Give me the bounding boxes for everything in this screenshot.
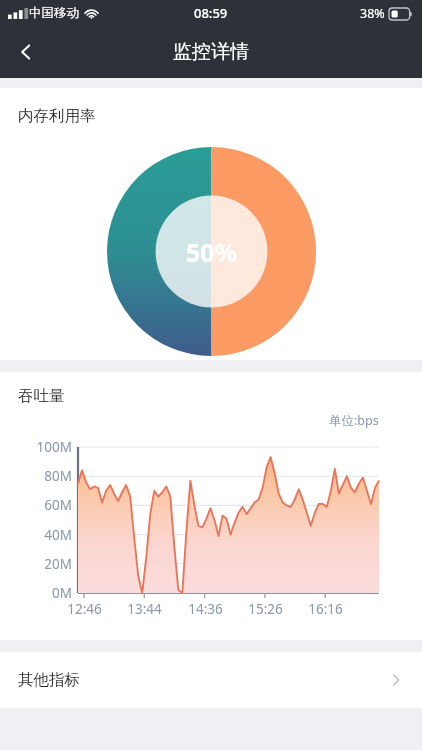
staticText: 14:36	[188, 600, 223, 618]
staticText: 12:46	[67, 600, 102, 618]
staticText: 80M	[44, 467, 72, 485]
staticText: 单位:bps	[329, 412, 379, 429]
staticText: 40M	[44, 526, 72, 544]
staticText: 内存利用率	[18, 106, 96, 126]
staticText: 15:26	[248, 600, 283, 618]
staticText: 中国移动	[29, 5, 79, 21]
staticText: 100M	[36, 438, 72, 456]
staticText: 13:44	[127, 600, 162, 618]
staticText: 监控详情	[173, 40, 249, 64]
staticText: 50%	[186, 235, 238, 269]
button[interactable]: 其他指标	[0, 652, 422, 708]
staticText: 16:16	[308, 600, 343, 618]
staticText: 60M	[44, 496, 72, 514]
staticText: 08:59	[194, 4, 228, 22]
staticText: 吞吐量	[18, 386, 65, 406]
button[interactable]: Back	[0, 26, 52, 78]
staticText: 0M	[52, 584, 72, 602]
staticText: 20M	[44, 555, 72, 573]
staticText: 其他指标	[18, 670, 80, 690]
staticText: 38%	[360, 5, 385, 22]
